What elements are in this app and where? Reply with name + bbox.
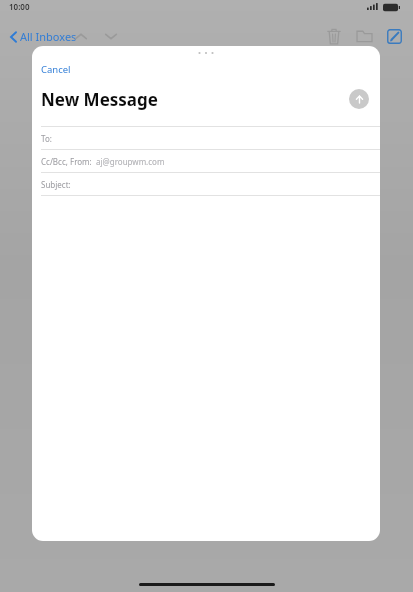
staticText: To: — [41, 133, 52, 144]
staticText: Subject: — [41, 179, 71, 190]
button[interactable]: Send — [349, 89, 369, 109]
button[interactable]: Compose new message — [380, 22, 408, 50]
staticText: Cancel — [41, 63, 71, 76]
button[interactable]: Previous message — [68, 23, 94, 49]
staticText: Cc/Bcc, From: — [41, 156, 92, 167]
staticText: All Inboxes — [20, 29, 77, 44]
button[interactable]: Cancel — [36, 60, 76, 79]
button[interactable]: Move to folder — [350, 22, 378, 50]
staticText: New Message — [41, 88, 158, 111]
button[interactable]: Next message — [98, 23, 124, 49]
button[interactable]: All Inboxes — [6, 25, 80, 48]
button[interactable]: Cc/Bcc, From: — [32, 150, 380, 172]
button[interactable]: Subject: — [32, 173, 380, 195]
button[interactable]: To: — [32, 127, 380, 149]
button[interactable]: Delete — [320, 22, 348, 50]
staticText: aj@groupwm.com — [96, 156, 165, 167]
staticText: 10:00 — [9, 1, 30, 12]
